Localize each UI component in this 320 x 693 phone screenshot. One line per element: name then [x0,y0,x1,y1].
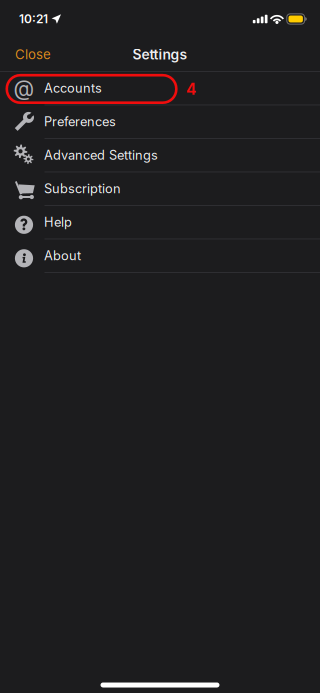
staticText: 10:21 [19,12,48,26]
button[interactable]: @ [0,72,320,105]
staticText: Close [15,46,51,62]
staticText: Preferences [44,114,116,129]
staticText: Help [44,214,72,230]
staticText: Advanced Settings [44,147,158,163]
staticText: Subscription [44,181,121,196]
staticText: Accounts [44,80,102,96]
button[interactable]: Subscription [0,172,320,206]
button[interactable]: Help [0,206,320,239]
button[interactable]: About [0,239,320,273]
staticText: About [44,248,81,263]
button[interactable]: Preferences [0,105,320,139]
staticText: @ [13,75,34,101]
staticText: Settings [132,46,187,63]
staticText: 4 [186,80,196,99]
button[interactable]: Advanced Settings [0,139,320,172]
button[interactable]: Close [0,38,66,71]
